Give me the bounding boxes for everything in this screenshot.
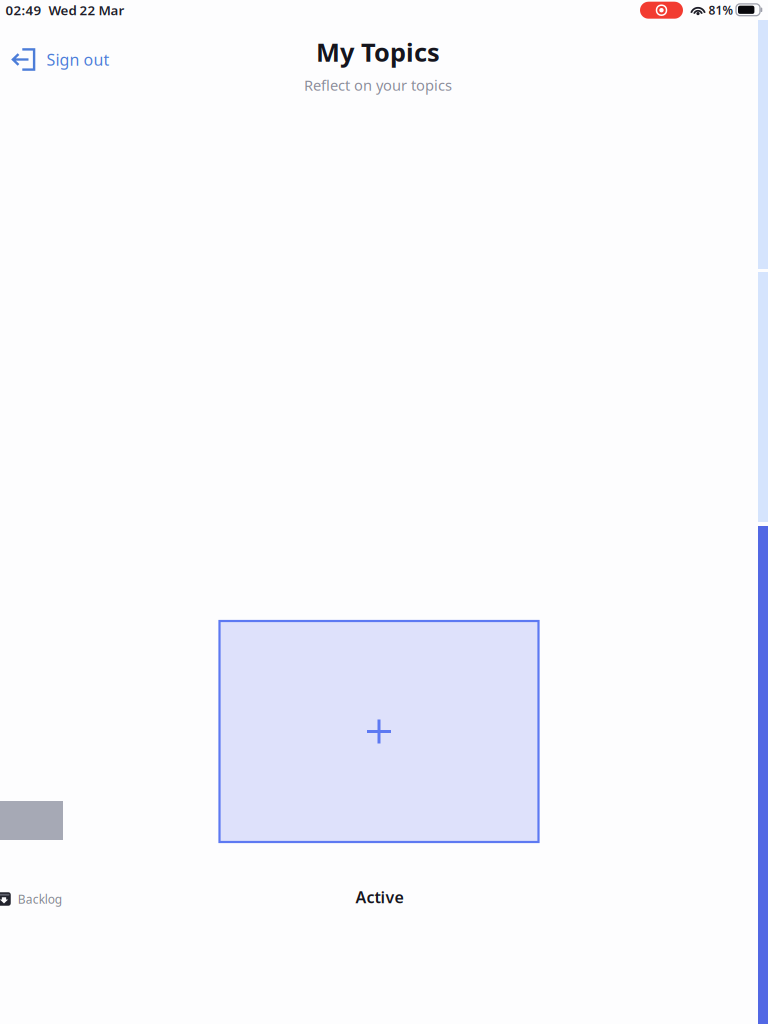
button[interactable]: Active <box>345 880 413 914</box>
staticText: Wed 22 Mar <box>48 1 124 19</box>
button[interactable]: Add a topic to Active <box>219 621 538 842</box>
staticText: 81% <box>708 2 733 18</box>
staticText: Reflect on your topics <box>304 75 452 95</box>
button[interactable]: Sign out <box>0 40 120 79</box>
staticText: 02:49 <box>5 1 41 19</box>
staticText: My Topics <box>316 35 440 69</box>
staticText: Active <box>355 886 403 908</box>
button[interactable]: Backlog <box>0 885 62 913</box>
staticText: Backlog <box>18 891 62 907</box>
staticText: Sign out <box>46 49 109 70</box>
